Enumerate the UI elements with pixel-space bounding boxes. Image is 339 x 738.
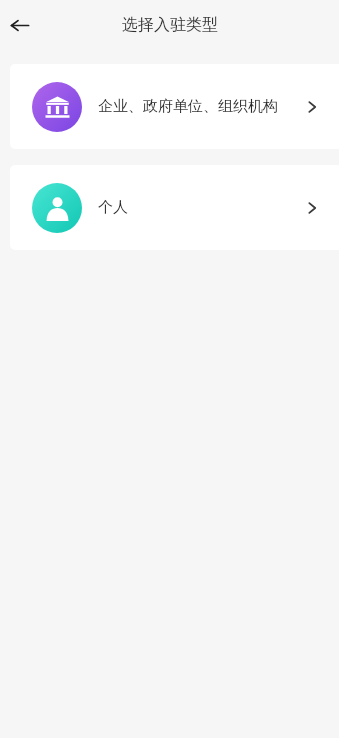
staticText: 企业、政府单位、组织机构 [98,97,278,116]
button[interactable]: Back [3,9,35,41]
button[interactable]: 企业、政府单位、组织机构 [10,64,339,149]
staticText: 个人 [98,198,128,217]
staticText: 选择入驻类型 [122,15,218,35]
button[interactable]: 个人 [10,165,339,250]
